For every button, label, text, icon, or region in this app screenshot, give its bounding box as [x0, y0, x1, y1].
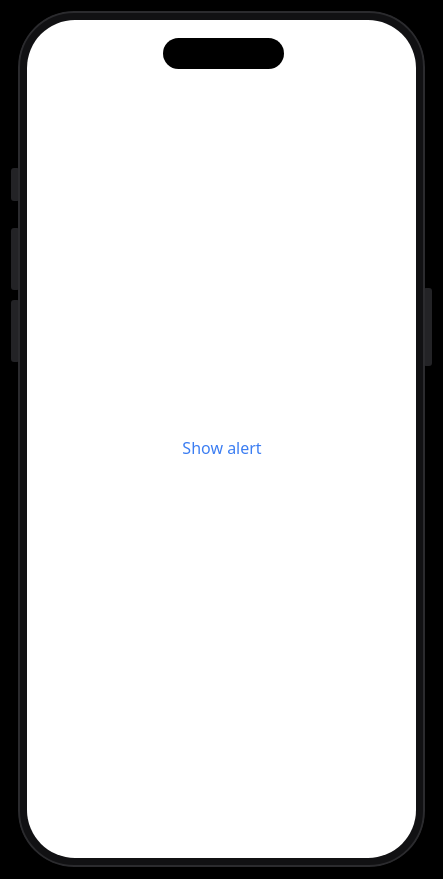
button[interactable]: Ring silent switch	[11, 168, 20, 201]
button[interactable]: Volume up	[11, 228, 20, 290]
button[interactable]: Side button	[423, 288, 432, 366]
staticText: Show alert	[182, 437, 262, 459]
button[interactable]: Show alert	[174, 433, 270, 463]
button[interactable]: Volume down	[11, 300, 20, 362]
